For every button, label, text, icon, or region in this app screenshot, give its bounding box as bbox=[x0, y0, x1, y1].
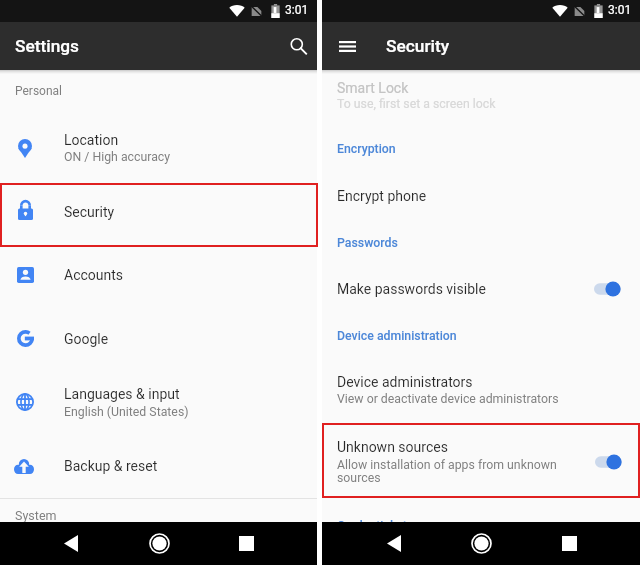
staticText: Passwords bbox=[337, 236, 398, 250]
staticText: System bbox=[15, 508, 57, 523]
button[interactable]: Home bbox=[138, 522, 180, 565]
button[interactable] bbox=[322, 163, 640, 212]
staticText: Settings bbox=[15, 36, 80, 56]
button[interactable]: Open navigation drawer bbox=[325, 22, 369, 70]
staticText: Accounts bbox=[64, 267, 124, 283]
button[interactable] bbox=[0, 371, 317, 435]
staticText: Device administration bbox=[337, 329, 457, 343]
button[interactable]: Back bbox=[373, 522, 415, 565]
staticText: View or deactivate device administrators bbox=[337, 392, 559, 406]
button[interactable] bbox=[0, 244, 317, 307]
button[interactable]: Recent apps bbox=[225, 522, 267, 565]
staticText: Backup & reset bbox=[64, 458, 158, 474]
staticText: Allow installation of apps from unknown bbox=[337, 458, 557, 472]
button[interactable] bbox=[0, 70, 317, 120]
button[interactable]: Search bbox=[281, 24, 316, 69]
staticText: 3:01 bbox=[608, 3, 632, 17]
button[interactable] bbox=[0, 120, 317, 184]
button[interactable]: Back bbox=[50, 522, 92, 565]
button[interactable] bbox=[0, 435, 317, 495]
staticText: Languages & input bbox=[64, 386, 180, 402]
button[interactable] bbox=[322, 312, 640, 360]
staticText: Location bbox=[64, 132, 119, 148]
staticText: Google bbox=[64, 331, 109, 347]
staticText: Unknown sources bbox=[337, 439, 448, 455]
staticText: Personal bbox=[15, 84, 63, 98]
staticText: Credential storage bbox=[337, 519, 438, 533]
button[interactable] bbox=[0, 307, 317, 371]
staticText: Encrypt phone bbox=[337, 188, 427, 204]
staticText: Security bbox=[64, 204, 115, 220]
staticText: Make passwords visible bbox=[337, 281, 486, 297]
staticText: ON / High accuracy bbox=[64, 150, 171, 164]
staticText: Device administrators bbox=[337, 374, 473, 390]
staticText: Encryption bbox=[337, 142, 396, 156]
button[interactable] bbox=[322, 360, 640, 424]
staticText: 3:01 bbox=[285, 3, 309, 17]
button[interactable] bbox=[322, 424, 640, 495]
staticText: Security bbox=[386, 36, 450, 56]
button[interactable] bbox=[322, 212, 640, 256]
button[interactable] bbox=[0, 184, 317, 244]
staticText: Smart Lock bbox=[337, 80, 409, 96]
button[interactable] bbox=[322, 70, 640, 119]
staticText: English (United States) bbox=[64, 405, 189, 419]
button[interactable]: Home bbox=[460, 522, 502, 565]
button[interactable] bbox=[322, 119, 640, 163]
staticText: To use, first set a screen lock bbox=[337, 97, 496, 111]
staticText: sources bbox=[337, 471, 381, 485]
button[interactable] bbox=[322, 256, 640, 312]
button[interactable]: Recent apps bbox=[548, 522, 590, 565]
